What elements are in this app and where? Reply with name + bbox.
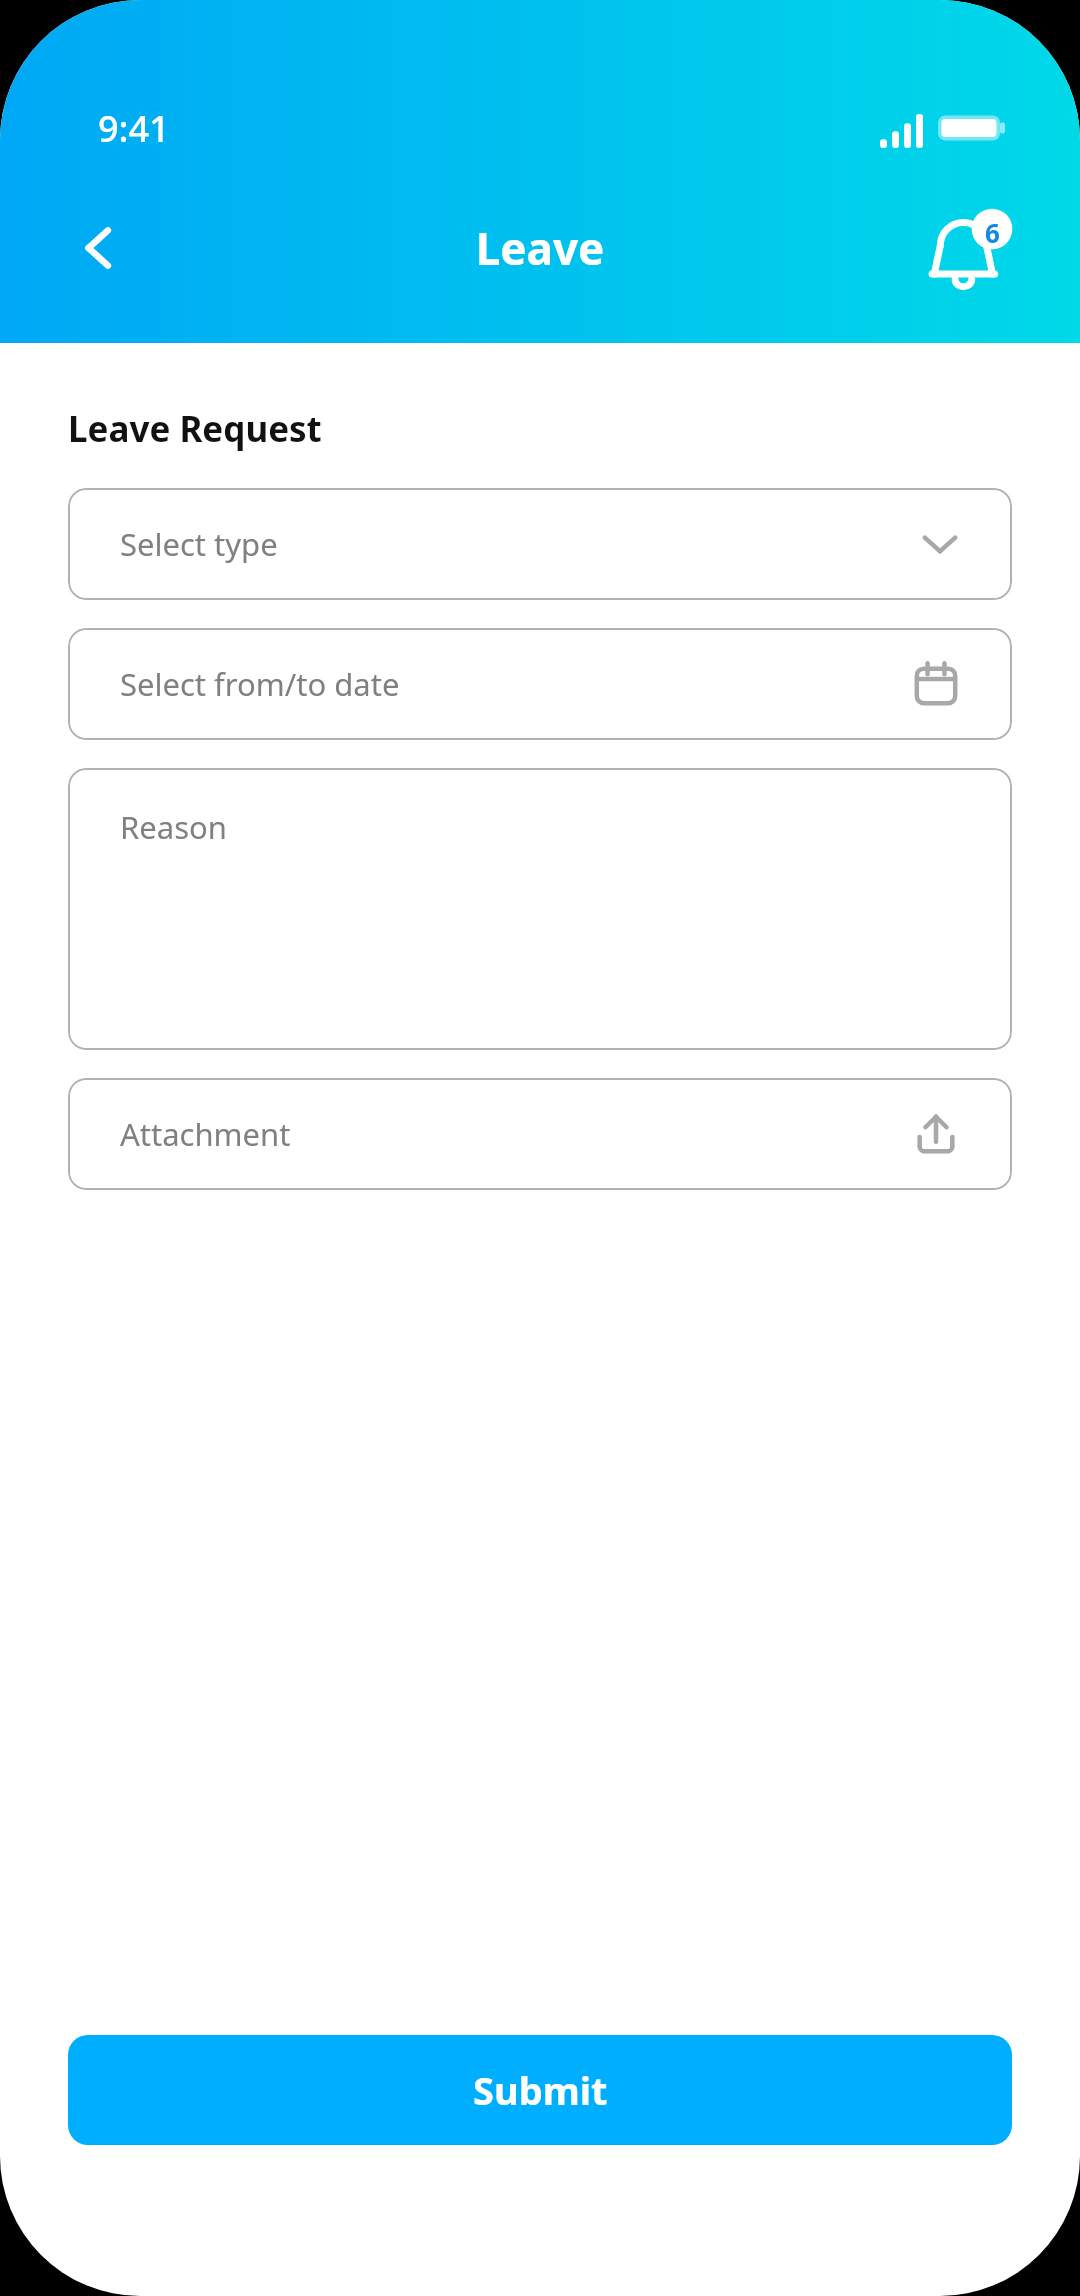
button[interactable]: Attachment [68, 1078, 1012, 1190]
staticText: Attachment [120, 1113, 912, 1155]
staticText: Leave Request [68, 405, 322, 453]
button[interactable]: Reason [68, 768, 1012, 1050]
staticText: Reason [120, 806, 227, 848]
staticText: 6 [985, 215, 1000, 250]
staticText: 9:41 [98, 104, 170, 153]
button[interactable]: Submit [68, 2035, 1012, 2145]
staticText: Select from/to date [120, 663, 912, 705]
staticText: Select type [120, 523, 920, 565]
button[interactable]: Select from/to date [68, 628, 1012, 740]
button[interactable]: Back [52, 200, 148, 296]
staticText: Submit [473, 2064, 608, 2116]
button[interactable]: Notifications [915, 196, 1025, 306]
button[interactable]: Select type [68, 488, 1012, 600]
staticText: Leave [0, 218, 1080, 278]
